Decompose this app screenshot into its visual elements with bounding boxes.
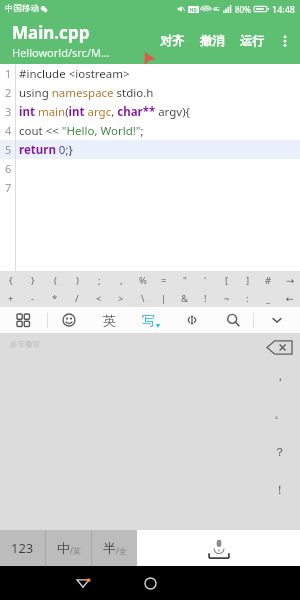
staticText: /英 xyxy=(70,545,81,556)
staticText: \ xyxy=(141,292,145,305)
staticText: 4 xyxy=(5,123,12,138)
button[interactable]: 123 xyxy=(0,530,45,566)
staticText: 多字叠写 xyxy=(10,340,40,349)
button[interactable]: ; xyxy=(88,271,110,289)
staticText: ！ xyxy=(274,482,286,497)
staticText: 1 xyxy=(5,66,12,81)
button[interactable]: % xyxy=(132,271,153,289)
staticText: using namespace stdio.h xyxy=(19,85,154,101)
button[interactable]: 。 xyxy=(263,394,297,432)
button[interactable]: 撤消 xyxy=(192,27,232,54)
button[interactable]: \ xyxy=(132,289,153,307)
staticText: 123 xyxy=(11,539,34,557)
button[interactable]: ( xyxy=(44,271,66,289)
staticText: 5 xyxy=(5,142,12,157)
button[interactable]: , xyxy=(110,271,132,289)
button[interactable]: [ xyxy=(216,271,237,289)
button[interactable]: Home xyxy=(133,566,167,600)
staticText: " xyxy=(183,274,187,287)
staticText: 对齐 xyxy=(160,33,184,48)
staticText: # xyxy=(265,274,272,287)
staticText: ! xyxy=(204,292,207,305)
button[interactable]: : xyxy=(237,289,258,307)
button[interactable]: 英 xyxy=(89,307,130,333)
button[interactable]: & xyxy=(174,289,195,307)
button[interactable]: ~ xyxy=(216,289,237,307)
staticText: < xyxy=(96,292,102,305)
button[interactable]: * xyxy=(44,289,66,307)
staticText: / xyxy=(75,292,79,305)
button[interactable]: > xyxy=(110,289,132,307)
button[interactable]: Search xyxy=(212,307,253,333)
staticText: { xyxy=(9,274,13,287)
button[interactable]: _ xyxy=(258,289,279,307)
staticText: * xyxy=(52,292,58,305)
button[interactable]: Keyboard layouts xyxy=(0,307,47,333)
staticText: = xyxy=(161,274,167,287)
staticText: HD xyxy=(190,7,197,13)
button[interactable]: Emoji xyxy=(48,307,89,333)
staticText: ] xyxy=(246,274,250,287)
button[interactable]: - xyxy=(22,289,44,307)
button[interactable]: ？ xyxy=(263,432,297,470)
staticText: ， xyxy=(274,368,286,383)
button[interactable]: Back xyxy=(66,566,100,600)
button[interactable]: 对齐 xyxy=(152,27,192,54)
staticText: 半 xyxy=(103,540,116,556)
button[interactable]: = xyxy=(153,271,174,289)
staticText: : xyxy=(246,292,249,305)
staticText: 运行 xyxy=(240,33,264,48)
staticText: /全 xyxy=(116,545,127,556)
button[interactable]: ] xyxy=(237,271,258,289)
staticText: → xyxy=(286,275,294,286)
staticText: #include <iostream> xyxy=(19,66,130,82)
staticText: _ xyxy=(266,292,271,305)
button[interactable]: ! xyxy=(195,289,216,307)
button[interactable]: ！ xyxy=(263,470,297,508)
staticText: 中 xyxy=(57,540,70,556)
button[interactable]: More options xyxy=(272,28,298,54)
staticText: 写 xyxy=(142,312,155,328)
staticText: 2 xyxy=(5,85,12,100)
staticText: 英 xyxy=(103,312,116,328)
staticText: ) xyxy=(76,274,79,287)
staticText: ; xyxy=(98,274,101,287)
staticText: cout << "Hello, World!"; xyxy=(19,123,144,139)
staticText: 。 xyxy=(274,406,286,421)
button[interactable]: ← xyxy=(279,289,300,307)
button[interactable]: | xyxy=(153,289,174,307)
button[interactable]: + xyxy=(0,289,22,307)
button[interactable]: Backspace xyxy=(265,339,295,356)
button[interactable]: 运行 xyxy=(232,27,272,54)
button[interactable]: ' xyxy=(195,271,216,289)
staticText: % xyxy=(139,274,147,287)
button[interactable]: } xyxy=(22,271,44,289)
staticText: ？ xyxy=(274,444,286,459)
button[interactable]: 半 xyxy=(92,530,137,566)
staticText: 中国移动 xyxy=(5,3,39,14)
button[interactable]: < xyxy=(88,289,110,307)
button[interactable]: " xyxy=(174,271,195,289)
staticText: 6 xyxy=(5,161,12,176)
staticText: 14:48 xyxy=(272,3,296,15)
button[interactable]: ) xyxy=(66,271,88,289)
button[interactable]: / xyxy=(66,289,88,307)
staticText: int main(int argc, char** argv){ xyxy=(19,104,190,120)
button[interactable]: ， xyxy=(263,356,297,394)
staticText: + xyxy=(8,292,14,305)
staticText: 7 xyxy=(5,180,12,195)
button[interactable]: Hide keyboard xyxy=(254,307,300,333)
staticText: > xyxy=(118,292,124,305)
staticText: , xyxy=(120,274,123,287)
button[interactable]: Cursor move xyxy=(171,307,212,333)
button[interactable]: Voice input xyxy=(137,530,300,566)
staticText: ← xyxy=(286,293,294,304)
button[interactable]: 中 xyxy=(46,530,91,566)
staticText: | xyxy=(161,292,167,305)
staticText: ( xyxy=(54,274,57,287)
button[interactable]: → xyxy=(279,271,300,289)
button[interactable]: 写 xyxy=(130,307,171,333)
staticText: ' xyxy=(204,274,207,287)
button[interactable]: # xyxy=(258,271,279,289)
button[interactable]: { xyxy=(0,271,22,289)
